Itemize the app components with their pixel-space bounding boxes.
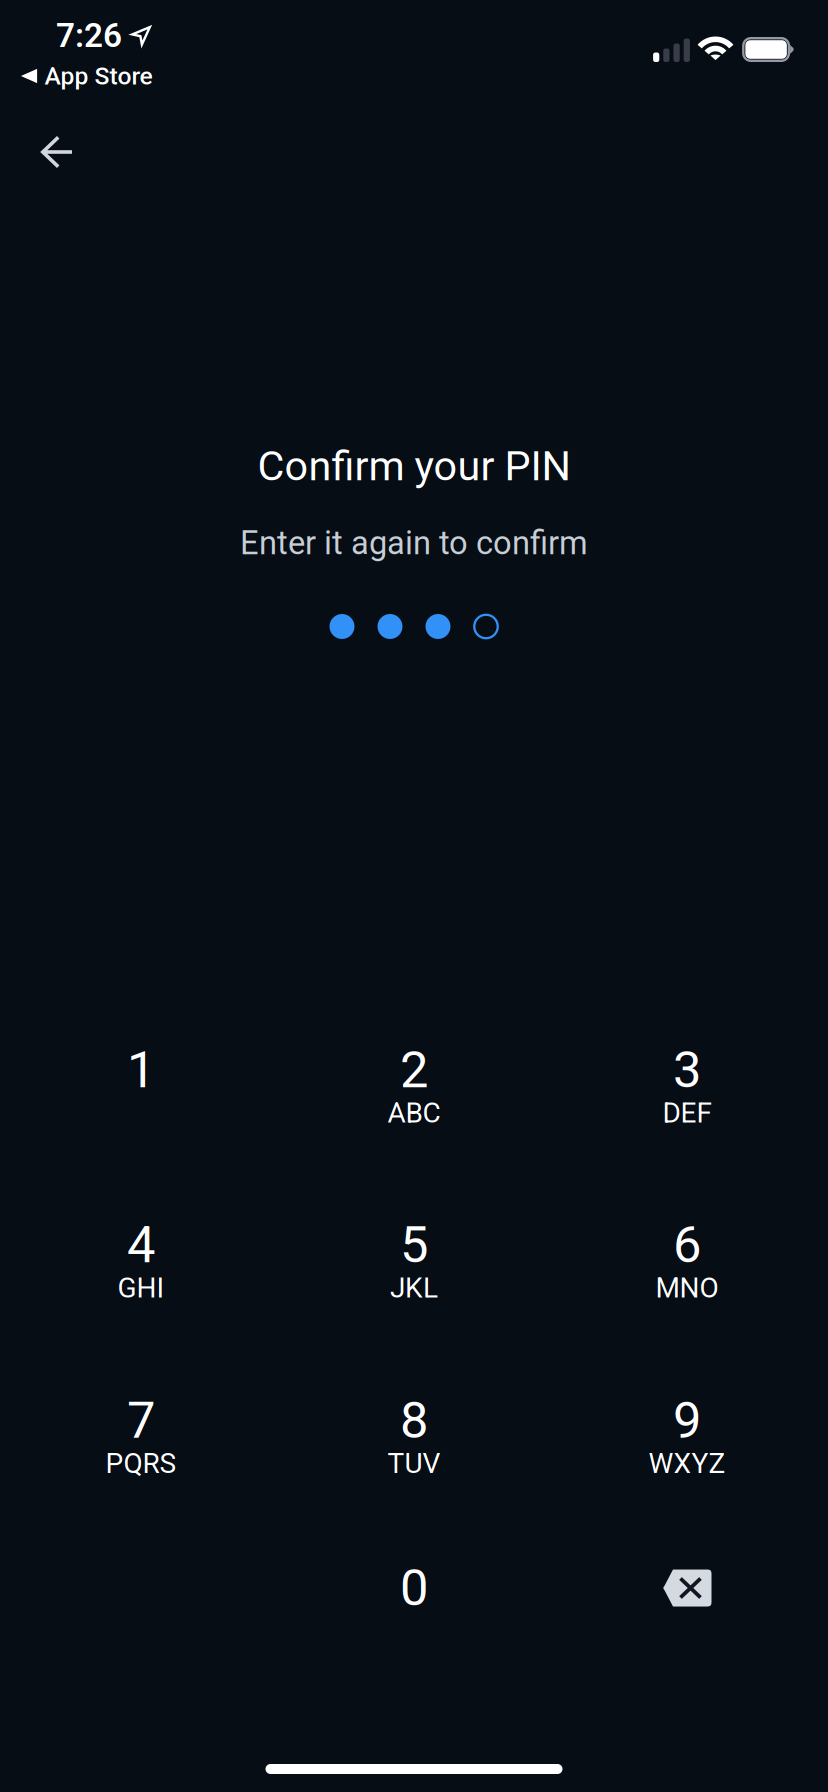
staticText: 0 xyxy=(400,1558,428,1618)
staticText: PQRS xyxy=(105,1447,176,1480)
staticText: 2 xyxy=(400,1040,428,1100)
button[interactable]: 3 xyxy=(562,986,812,1154)
button[interactable]: Delete xyxy=(562,1504,812,1672)
button[interactable]: App Store xyxy=(15,54,157,97)
staticText: TUV xyxy=(387,1447,440,1480)
staticText: 6 xyxy=(673,1215,701,1275)
staticText: 7 xyxy=(127,1391,155,1450)
staticText: 8 xyxy=(400,1391,428,1450)
staticText: ABC xyxy=(387,1097,440,1129)
button[interactable]: 6 xyxy=(562,1161,812,1329)
staticText: 3 xyxy=(673,1040,701,1100)
staticText: WXYZ xyxy=(648,1447,725,1480)
button[interactable]: 0 xyxy=(289,1504,539,1672)
staticText: DEF xyxy=(662,1097,711,1129)
staticText: Confirm your PIN xyxy=(257,442,570,490)
staticText: App Store xyxy=(44,61,152,90)
staticText: MNO xyxy=(655,1272,718,1304)
staticText: Enter it again to confirm xyxy=(240,524,588,562)
button[interactable]: 1 xyxy=(16,986,266,1154)
staticText: 1 xyxy=(127,1040,155,1100)
button[interactable]: 5 xyxy=(289,1161,539,1329)
staticText: 7:26 xyxy=(56,16,122,55)
button[interactable]: 9 xyxy=(562,1336,812,1504)
staticText: 5 xyxy=(400,1215,428,1275)
staticText: 9 xyxy=(673,1391,701,1450)
button[interactable]: 4 xyxy=(16,1161,266,1329)
staticText: 4 xyxy=(127,1215,155,1275)
button[interactable]: 8 xyxy=(289,1336,539,1504)
staticText: JKL xyxy=(390,1272,438,1304)
button[interactable]: 2 xyxy=(289,986,539,1154)
button[interactable]: 7 xyxy=(16,1336,266,1504)
staticText: GHI xyxy=(117,1272,164,1304)
button[interactable]: Back xyxy=(17,113,98,190)
